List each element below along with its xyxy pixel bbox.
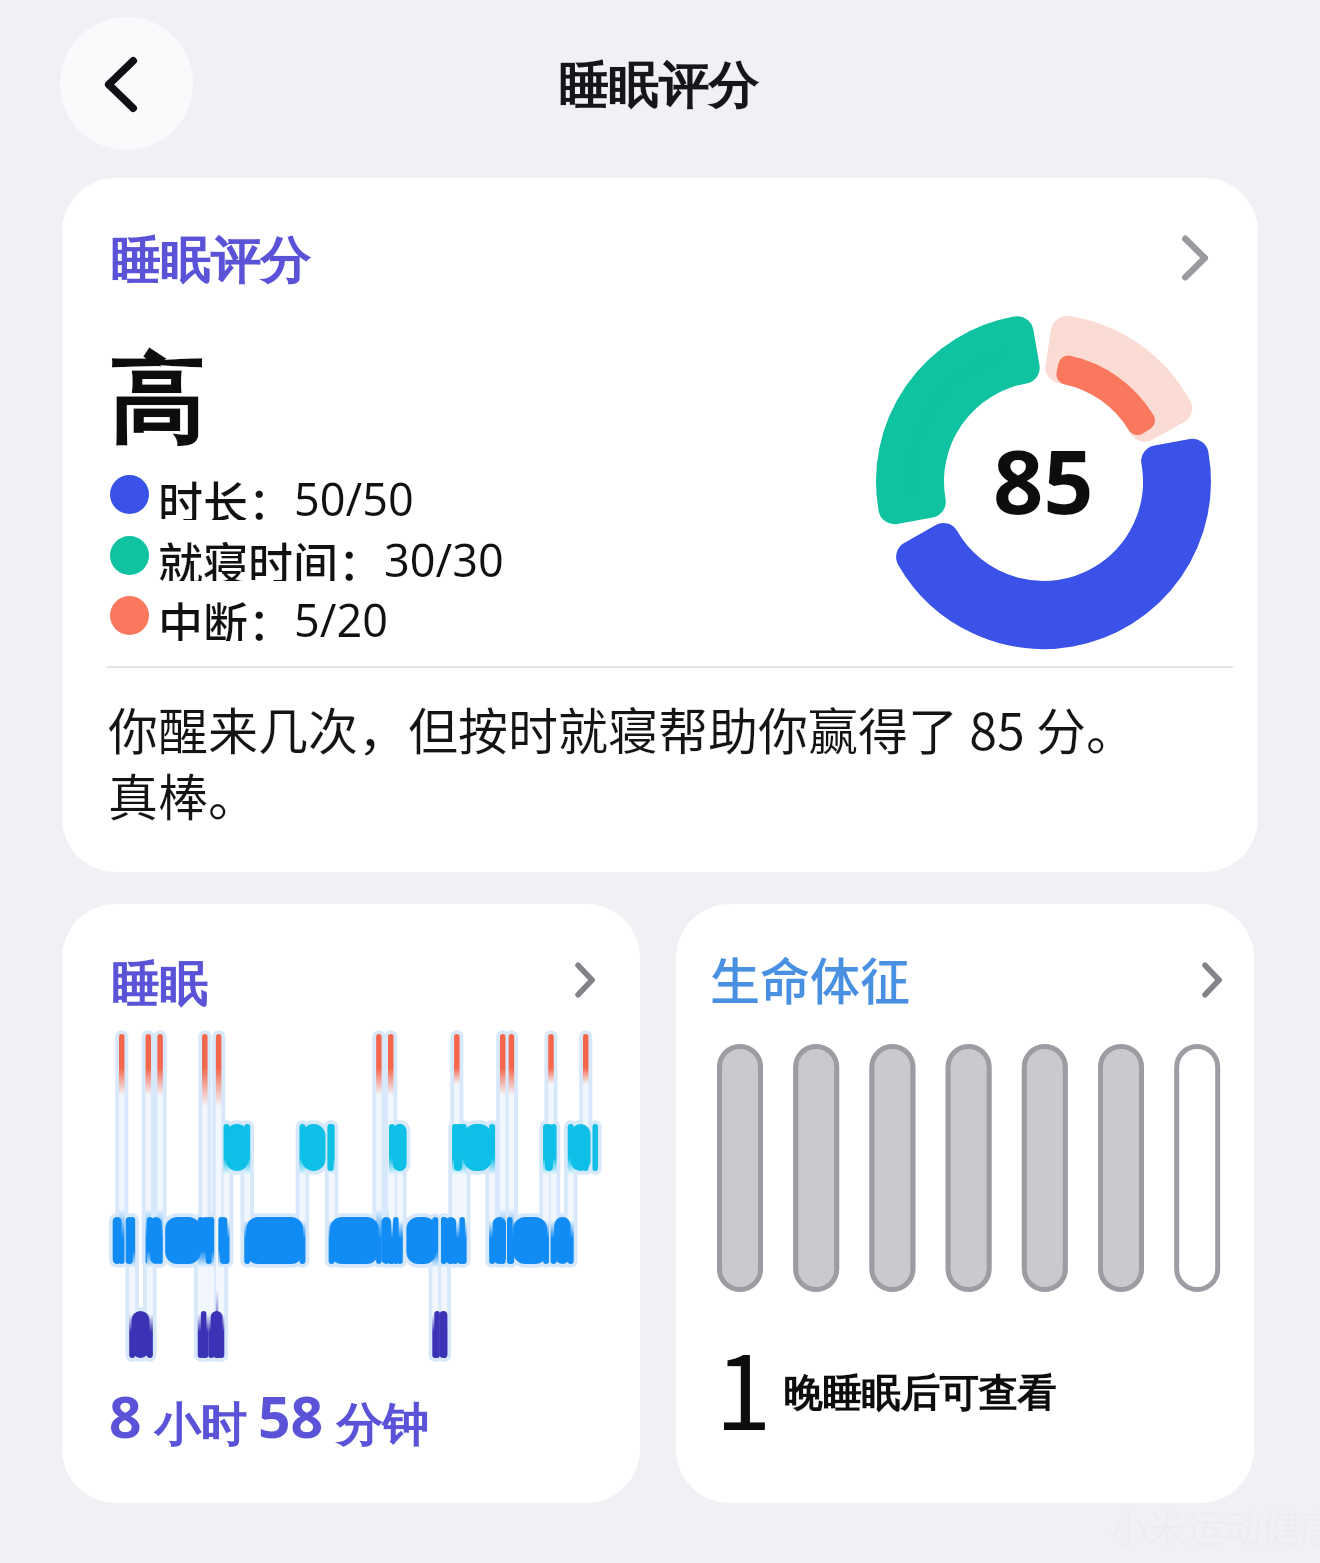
staticText: 5/20 — [294, 589, 388, 641]
staticText: 50/50 — [294, 468, 414, 520]
staticText: 睡眠评分 — [558, 55, 758, 118]
staticText: 就寝时间： — [158, 529, 384, 581]
staticText: 8 — [109, 1377, 142, 1455]
button[interactable]: 打开生命体征 — [1182, 948, 1242, 1012]
staticText: 晚睡眠后可查看 — [783, 1369, 1056, 1418]
staticText: 30/30 — [384, 529, 504, 581]
button[interactable]: 睡眠 — [62, 904, 640, 1503]
staticText: 小米运动健康 — [1110, 1498, 1320, 1553]
staticText: 睡眠 — [111, 955, 207, 1015]
staticText: 生命体征 — [710, 942, 910, 1014]
staticText: 85 — [993, 420, 1094, 540]
staticText: 时长： — [158, 468, 294, 520]
staticText: 你醒来几次，但按时就寝帮助你赢得了 85 分。 真棒。 — [108, 692, 1218, 830]
staticText: 小时 — [142, 1392, 258, 1455]
staticText: 中断： — [158, 589, 294, 641]
staticText: 分钟 — [324, 1392, 428, 1455]
button[interactable]: 打开睡眠 — [555, 948, 615, 1012]
staticText: 58 — [258, 1377, 324, 1455]
button[interactable]: Back — [60, 17, 193, 150]
button[interactable]: 生命体征 — [676, 904, 1254, 1503]
staticText: 高 — [108, 342, 204, 463]
staticText: 1 — [715, 1312, 772, 1460]
staticText: 睡眠评分 — [110, 230, 310, 293]
button[interactable]: 睡眠评分 — [62, 178, 1258, 872]
button[interactable]: 打开睡眠评分 — [1165, 226, 1225, 290]
